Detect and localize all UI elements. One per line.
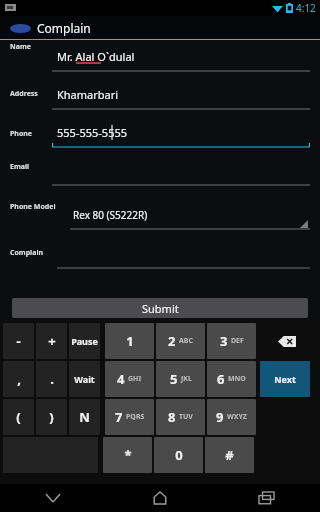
staticText: Rex 80 (S5222R) [73,208,148,222]
staticText: JKL [181,374,192,384]
staticText: Phone [10,129,33,139]
staticText: Khamarbari [57,87,119,102]
staticText: 555-555-5555 [57,125,128,140]
staticText: PQRS [126,412,145,422]
button[interactable]: 9 [207,399,256,435]
staticText: 1 [126,332,134,350]
button[interactable]: Hide keyboard [0,484,106,512]
button[interactable]: Pause [69,323,100,359]
staticText: Email [10,162,30,172]
staticText: - [16,332,21,350]
button[interactable]: 6 [207,361,256,397]
staticText: GHI [128,374,142,384]
button[interactable]: 1 [105,323,154,359]
button[interactable]: 3 [207,323,256,359]
staticText: 2 [168,332,176,350]
button[interactable]: 555-555-5555 [52,124,310,152]
staticText: Complain [37,20,91,36]
staticText: 0 [175,446,183,464]
staticText: 5 [170,370,178,388]
button[interactable]: N [69,399,100,435]
staticText: , [17,370,21,388]
button[interactable]: Home [106,484,213,512]
button[interactable]: Mr. Alal O`dulal [52,48,310,76]
button[interactable]: 8 [156,399,205,435]
staticText: 6 [217,370,225,388]
staticText: 4 [117,370,125,388]
staticText: Next [274,373,296,385]
staticText: DEF [231,336,244,346]
staticText: * [124,446,132,464]
button[interactable]: 0 [154,437,203,473]
button[interactable]: - [3,323,34,359]
button[interactable]: Next [260,361,310,397]
staticText: Mr. Alal O`dulal [57,49,135,64]
button[interactable]: * [103,437,152,473]
button[interactable] [57,248,310,270]
staticText: 4:12 [296,1,316,15]
staticText: 9 [216,408,224,426]
button[interactable]: ( [3,399,34,435]
staticText: TUV [179,412,193,422]
staticText: MNO [228,374,246,384]
staticText: N [79,408,90,426]
staticText: Complain [10,248,44,258]
button[interactable]: Khamarbari [52,86,310,114]
button[interactable]: ) [36,399,67,435]
button[interactable]: Backspace [260,323,314,359]
staticText: ) [49,408,54,426]
button[interactable]: Recent apps [213,484,320,512]
staticText: + [48,332,56,350]
staticText: Submit [142,301,179,316]
staticText: Address [10,89,38,99]
button[interactable]: 5 [156,361,205,397]
staticText: . [50,370,54,388]
staticText: Pause [71,335,98,347]
staticText: Phone Model [10,202,56,212]
staticText: ABC [179,336,193,346]
button[interactable]: # [205,437,254,473]
button[interactable]: Phone Model dropdown [70,208,310,232]
staticText: WXYZ [227,412,247,422]
staticText: 7 [115,408,123,426]
button[interactable]: . [36,361,67,397]
button[interactable]: Wait [69,361,100,397]
staticText: ( [16,408,21,426]
staticText: 3 [220,332,228,350]
button[interactable]: 4 [105,361,154,397]
staticText: Wait [74,373,95,385]
staticText: 8 [168,408,176,426]
staticText: Name [10,42,31,52]
button[interactable] [52,162,310,190]
button[interactable]: 2 [156,323,205,359]
button[interactable]: Submit [12,298,308,318]
staticText: # [225,446,234,464]
button[interactable]: + [36,323,67,359]
button[interactable]: 7 [105,399,154,435]
button[interactable]: , [3,361,34,397]
